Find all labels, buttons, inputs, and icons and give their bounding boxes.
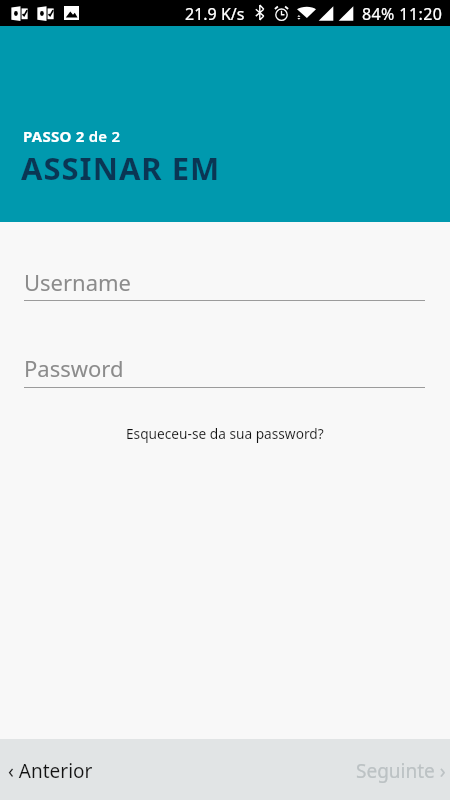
staticText: Esqueceu-se da sua password? [126, 424, 324, 443]
staticText: Username [24, 267, 132, 297]
staticText: PASSO 2 de 2 [23, 126, 121, 146]
button[interactable]: Username [24, 258, 425, 301]
staticText: ASSINAR EM [21, 147, 221, 189]
staticText: 21.9 K/s [185, 3, 245, 25]
staticText: Password [24, 353, 124, 383]
button[interactable]: Password [24, 344, 425, 388]
button[interactable]: Esqueceu-se da sua password? [0, 419, 450, 447]
staticText: Seguinte › [356, 758, 446, 784]
staticText: ‹ Anterior [8, 758, 93, 784]
button[interactable]: ‹ Anterior [0, 746, 107, 793]
button[interactable]: Seguinte › [342, 746, 450, 793]
staticText: 84% 11:20 [362, 3, 443, 25]
